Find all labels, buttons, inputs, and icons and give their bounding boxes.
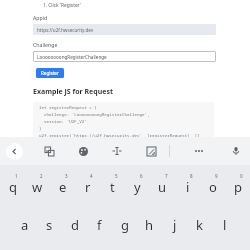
staticText: l <box>223 216 227 234</box>
staticText: a <box>21 216 29 234</box>
staticText: } <box>39 126 42 132</box>
button[interactable]: s <box>37 205 62 245</box>
staticText: t <box>110 178 115 196</box>
staticText: Example JS for Request <box>33 87 113 97</box>
staticText: r <box>85 178 91 196</box>
staticText: let registerRequest = { <box>39 105 97 111</box>
button[interactable]: 5 <box>100 165 125 205</box>
staticText: p <box>234 178 242 196</box>
button[interactable]: Resize keyboard <box>143 143 159 159</box>
button[interactable]: d <box>62 205 87 245</box>
button[interactable]: 2 <box>25 165 50 205</box>
staticText: u <box>158 178 167 196</box>
staticText: d <box>71 216 79 234</box>
button[interactable]: 0 <box>225 165 250 205</box>
button[interactable]: https://u2f.hwsecurity.dev <box>33 24 216 35</box>
staticText: u2f.register('https://u2f.hwsecurity.dev… <box>39 133 203 139</box>
button[interactable]: j <box>162 205 187 245</box>
button[interactable]: Themes <box>75 143 91 159</box>
staticText: y <box>134 178 141 196</box>
button[interactable]: a <box>12 205 37 245</box>
button[interactable]: l <box>212 205 237 245</box>
button[interactable]: Back <box>6 143 23 160</box>
button[interactable]: f <box>87 205 112 245</box>
button[interactable]: k <box>187 205 212 245</box>
staticText: j <box>173 216 177 234</box>
button[interactable]: LoooooooongRegisterChallenge <box>33 51 216 62</box>
button[interactable]: h <box>137 205 162 245</box>
staticText: version: 'U2F_V2' <box>39 119 87 125</box>
staticText: 4 <box>90 173 93 179</box>
button[interactable]: 7 <box>150 165 175 205</box>
staticText: 3 <box>65 173 68 179</box>
staticText: 5 <box>115 173 118 179</box>
staticText: g <box>121 216 129 234</box>
staticText: 8 <box>190 173 193 179</box>
staticText: e <box>59 178 67 196</box>
button[interactable]: 9 <box>200 165 225 205</box>
button[interactable]: Voice input <box>228 143 244 159</box>
staticText: 7 <box>165 173 168 179</box>
staticText: console.log("Send 'response' to the serv… <box>39 147 160 153</box>
staticText: k <box>196 216 203 234</box>
staticText: 9 <box>215 173 218 179</box>
button[interactable]: 6 <box>125 165 150 205</box>
staticText: Challenge <box>33 41 58 48</box>
staticText: q <box>9 178 17 196</box>
staticText: 6 <box>140 173 143 179</box>
staticText: Appid <box>33 14 48 21</box>
staticText: f <box>97 216 102 234</box>
staticText: i <box>186 178 190 196</box>
staticText: o <box>209 178 217 196</box>
button[interactable]: 1 <box>0 165 25 205</box>
staticText: LoooooooongRegisterChallenge <box>37 54 107 60</box>
staticText: Register <box>41 70 59 76</box>
button[interactable]: 8 <box>175 165 200 205</box>
staticText: 1 <box>15 173 18 179</box>
staticText: 0 <box>240 173 243 179</box>
staticText: h <box>145 216 154 234</box>
staticText: https://u2f.hwsecurity.dev <box>37 27 94 33</box>
button[interactable]: Register <box>36 68 64 78</box>
staticText: w <box>32 178 43 196</box>
staticText: s <box>46 216 53 234</box>
button[interactable]: Text editing <box>109 143 125 159</box>
button[interactable]: 3 <box>50 165 75 205</box>
staticText: 2 <box>40 173 43 179</box>
button[interactable]: Translate <box>41 143 57 159</box>
button[interactable]: More options <box>191 143 207 159</box>
button[interactable]: 4 <box>75 165 100 205</box>
staticText: challenge: 'LoooooooongRegisterChallenge… <box>39 112 150 118</box>
button[interactable]: g <box>112 205 137 245</box>
staticText: 1. Click 'Register' <box>43 2 81 9</box>
